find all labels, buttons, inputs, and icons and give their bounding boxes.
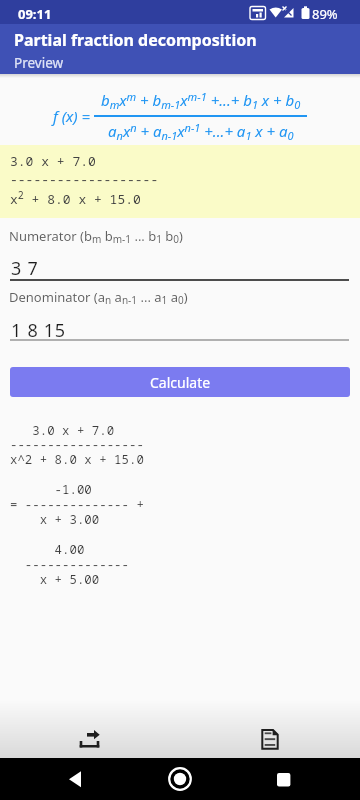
staticText: anxn + an-1xn-1 +...+ a1 x + a0 <box>108 120 294 143</box>
button[interactable] <box>251 758 309 800</box>
staticText: Calculate <box>150 373 211 392</box>
staticText: bmxm + bm-1xm-1 +...+ b1 x + b0 <box>101 89 301 112</box>
staticText: 3.0 x + 7.0 <box>10 152 96 170</box>
staticText: x2 + 8.0 x + 15.0 <box>10 188 141 208</box>
staticText: 3.0 x + 7.0 ------------------ x^2 + 8.0… <box>10 422 144 588</box>
button[interactable]: 1 8 15 <box>0 312 360 346</box>
button[interactable] <box>151 758 209 800</box>
button[interactable] <box>51 758 109 800</box>
button[interactable] <box>246 714 294 762</box>
button[interactable] <box>66 714 114 762</box>
staticText: Partial fraction decomposition <box>14 29 257 51</box>
button[interactable]: Calculate <box>10 367 350 397</box>
staticText: Numerator (bm bm-1 ... b1 b0) <box>9 227 183 246</box>
staticText: f (x) = <box>53 106 94 126</box>
staticText: Denominator (an an-1 ... a1 a0) <box>9 288 188 307</box>
staticText: 1 8 15 <box>11 318 66 343</box>
staticText: Preview <box>14 54 64 72</box>
staticText: 3 7 <box>11 256 39 281</box>
staticText: 09:11 <box>18 5 52 23</box>
staticText: 89% <box>312 5 338 23</box>
staticText: ------------------- <box>10 170 159 188</box>
button[interactable]: 3 7 <box>0 250 360 284</box>
